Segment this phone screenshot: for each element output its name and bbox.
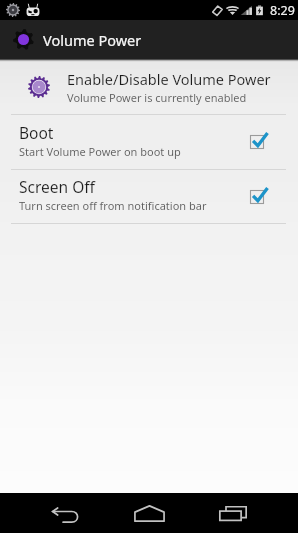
staticText: Start Volume Power on boot up [19, 144, 181, 159]
staticText: 8:29 [270, 2, 295, 19]
button[interactable]: Screen Off [0, 170, 298, 223]
button[interactable]: Recents [205, 493, 261, 533]
button[interactable]: Boot [0, 115, 298, 169]
button[interactable]: Enable/Disable Volume Power [0, 59, 298, 114]
staticText: Screen Off [19, 176, 95, 197]
button[interactable]: Back [37, 493, 93, 533]
staticText: Turn screen off from notification bar [19, 198, 207, 213]
staticText: Volume Power is currently enabled [67, 90, 247, 105]
staticText: Volume Power [43, 30, 142, 50]
staticText: Enable/Disable Volume Power [67, 69, 271, 89]
staticText: Boot [19, 122, 54, 143]
button[interactable]: Home [121, 493, 177, 533]
